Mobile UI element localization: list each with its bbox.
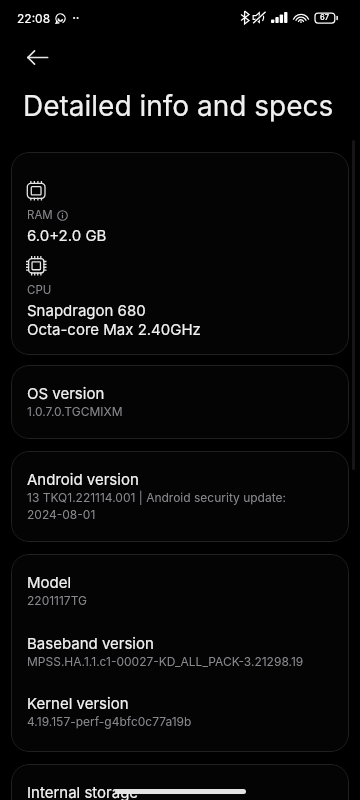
button[interactable]: OS version bbox=[11, 365, 349, 439]
button[interactable]: Android version bbox=[11, 451, 349, 542]
staticText: Kernel version bbox=[27, 694, 129, 713]
button[interactable]: Internal storage bbox=[11, 764, 349, 800]
staticText: 67 bbox=[320, 13, 330, 22]
staticText: RAM bbox=[27, 208, 53, 222]
staticText: Octa-core Max 2.40GHz bbox=[27, 320, 201, 339]
staticText: CPU bbox=[27, 283, 52, 297]
staticText: 1.0.7.0.TGCMIXM bbox=[27, 403, 123, 420]
staticText: Baseband version bbox=[27, 634, 154, 653]
staticText: 4.19.157-perf-g4bfc0c77a19b bbox=[27, 713, 192, 730]
staticText: Detailed info and specs bbox=[23, 89, 334, 123]
staticText: 6.0+2.0 GB bbox=[27, 226, 107, 245]
staticText: 2201117TG bbox=[27, 592, 87, 609]
staticText: 22:08 bbox=[17, 11, 51, 26]
button[interactable]: Model bbox=[11, 554, 349, 752]
button[interactable]: Back bbox=[13, 33, 61, 81]
staticText: Android version bbox=[27, 470, 139, 489]
staticText: Snapdragon 680 bbox=[27, 301, 146, 320]
staticText: MPSS.HA.1.1.c1-00027-KD_ALL_PACK-3.21298… bbox=[27, 653, 304, 670]
button[interactable]: RAM bbox=[11, 152, 349, 355]
staticText: Model bbox=[27, 573, 72, 592]
staticText: 13 TKQ1.221114.001 | Android security up… bbox=[27, 489, 286, 523]
staticText: OS version bbox=[27, 384, 105, 403]
staticText: Internal storage bbox=[27, 783, 139, 800]
